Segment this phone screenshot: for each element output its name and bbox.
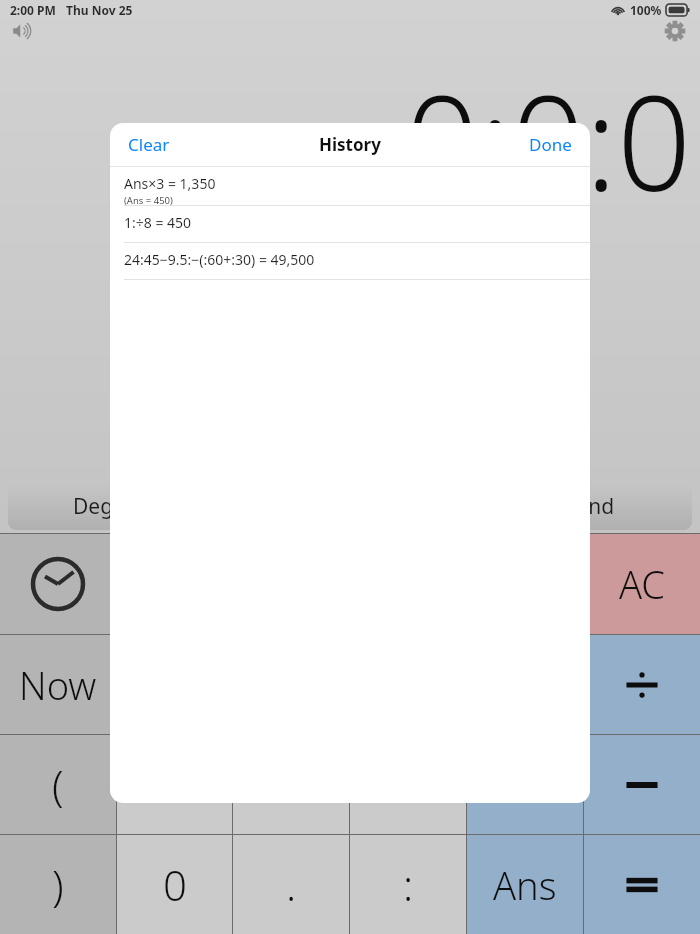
button[interactable] <box>584 735 700 834</box>
staticText: 2 <box>279 756 303 813</box>
button[interactable]: Second <box>464 482 692 530</box>
button[interactable]: 2 <box>233 735 349 834</box>
staticText: AC <box>619 558 666 610</box>
button[interactable] <box>584 635 700 734</box>
staticText: 1 <box>163 756 187 813</box>
staticText: . <box>286 856 297 913</box>
button[interactable]: ) <box>0 835 116 934</box>
button[interactable]: 3 <box>350 735 466 834</box>
staticText: 3 <box>396 756 420 813</box>
staticText: History <box>319 133 381 156</box>
button[interactable]: . <box>233 835 349 934</box>
staticText: 24:45−9.5:−(:60+:30) = 49,500 <box>124 250 315 269</box>
button[interactable]: Mute <box>8 17 36 45</box>
staticText: Ans×3 = 1,350 <box>124 174 216 193</box>
button[interactable]: 24:45−9.5:−(:60+:30) = 49,500 <box>110 243 590 279</box>
staticText: : <box>403 856 414 913</box>
staticText: Done <box>529 133 572 156</box>
staticText: Now <box>19 659 97 711</box>
button[interactable]: Now <box>0 635 116 734</box>
staticText: (Ans = 450) <box>124 194 173 205</box>
staticText: Ans <box>493 859 557 911</box>
button[interactable]: Settings <box>660 16 690 46</box>
staticText: 0 <box>163 856 187 913</box>
button[interactable]: 1 <box>117 735 232 834</box>
button[interactable]: Clear <box>124 127 174 162</box>
staticText: 2:00 PM <box>10 2 56 18</box>
button[interactable]: AC <box>584 534 700 634</box>
button[interactable] <box>584 835 700 934</box>
staticText: Thu Nov 25 <box>66 2 133 18</box>
button[interactable]: 1:÷8 = 450 <box>110 206 590 242</box>
staticText: Deg/Hour <box>73 492 171 521</box>
button[interactable]: Current time <box>0 534 116 634</box>
staticText: ( <box>52 756 64 813</box>
staticText: 1:÷8 = 450 <box>124 213 192 232</box>
button[interactable]: : <box>350 835 466 934</box>
button[interactable]: ± <box>467 735 583 834</box>
staticText: ) <box>52 856 64 913</box>
staticText: 0:0:0 <box>405 52 692 229</box>
button[interactable]: Deg/Hour <box>8 482 236 530</box>
button[interactable]: Ans <box>467 835 583 934</box>
staticText: Second <box>542 492 615 521</box>
button[interactable]: 0 <box>117 835 232 934</box>
staticText: ± <box>513 756 537 813</box>
other: Current time <box>28 554 88 614</box>
button[interactable]: ( <box>0 735 116 834</box>
staticText: 100% <box>630 2 662 18</box>
button[interactable]: Done <box>525 127 576 162</box>
button[interactable]: Ans×3 = 1,350 <box>110 167 590 205</box>
staticText: Clear <box>128 133 170 156</box>
